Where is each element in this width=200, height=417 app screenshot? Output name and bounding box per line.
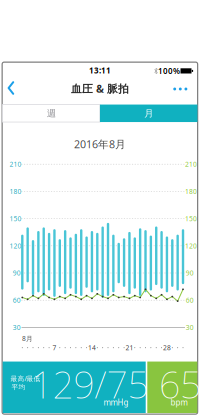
staticText: 2016年8月 bbox=[74, 137, 126, 151]
staticText: 13:11 bbox=[89, 65, 111, 76]
button[interactable] bbox=[1, 76, 21, 100]
staticText: 平均 bbox=[11, 383, 25, 391]
staticText: 180 bbox=[9, 187, 21, 196]
staticText: 30 bbox=[186, 323, 194, 332]
staticText: 150 bbox=[9, 214, 21, 223]
staticText: 7 bbox=[52, 343, 56, 352]
staticText: mmHg bbox=[103, 397, 128, 408]
staticText: 最高/最低 bbox=[10, 374, 40, 383]
staticText: 120 bbox=[9, 241, 21, 250]
staticText: 月 bbox=[144, 108, 153, 119]
staticText: 180 bbox=[185, 187, 197, 196]
staticText: 100% bbox=[158, 66, 180, 76]
staticText: 210 bbox=[185, 160, 197, 169]
staticText: 血圧 & 脈拍 bbox=[71, 81, 129, 96]
staticText: 21 bbox=[125, 343, 133, 352]
staticText: 14 bbox=[88, 343, 96, 352]
button[interactable]: 週 bbox=[2, 104, 100, 122]
staticText: 28 bbox=[163, 343, 171, 352]
button[interactable] bbox=[168, 79, 192, 99]
staticText: 30 bbox=[13, 323, 21, 332]
staticText: 8月 bbox=[22, 334, 33, 343]
staticText: 210 bbox=[9, 160, 21, 169]
staticText: 65 bbox=[159, 359, 200, 409]
staticText: 129/75 bbox=[31, 359, 148, 409]
staticText: 週 bbox=[47, 108, 56, 119]
staticText: 90 bbox=[186, 269, 194, 277]
staticText: 120 bbox=[185, 241, 197, 250]
staticText: 60 bbox=[186, 296, 194, 305]
staticText: 150 bbox=[185, 214, 197, 223]
staticText: bpm bbox=[170, 397, 187, 408]
staticText: 90 bbox=[13, 269, 21, 277]
button[interactable]: 月 bbox=[100, 104, 197, 122]
staticText: 60 bbox=[13, 296, 21, 305]
